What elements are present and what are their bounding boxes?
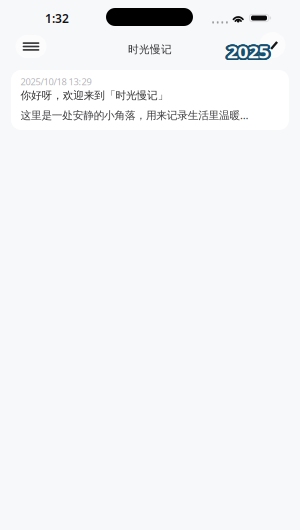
staticText: 2025	[228, 39, 272, 65]
staticText: 2025	[225, 41, 269, 67]
staticText: 2025	[227, 41, 271, 67]
staticText: 2025	[228, 38, 272, 65]
staticText: 2025	[225, 37, 269, 63]
staticText: 2025	[226, 41, 270, 67]
staticText: 2025	[224, 40, 268, 66]
button[interactable]: Menu	[11, 32, 51, 60]
staticText: 你好呀，欢迎来到「时光慢记」	[20, 89, 169, 102]
staticText: 这里是一处安静的小角落，用来记录生活里温暖…	[20, 108, 248, 122]
staticText: 时光慢记	[128, 43, 172, 56]
staticText: 2025	[224, 38, 268, 65]
staticText: 1:32	[45, 10, 69, 26]
staticText: 2025	[228, 37, 272, 64]
staticText: 2025	[225, 41, 269, 67]
staticText: 2025	[224, 40, 268, 67]
staticText: 2025	[227, 41, 271, 67]
staticText: 2025	[225, 37, 269, 63]
staticText: 2025	[227, 37, 271, 63]
staticText: 2025	[224, 38, 268, 64]
staticText: 2025	[228, 40, 272, 66]
staticText: 2025/10/18 13:29	[20, 75, 91, 88]
staticText: 2025	[228, 39, 272, 66]
button[interactable]: 2025/10/18 13:29	[11, 70, 289, 130]
staticText: 2025	[228, 40, 272, 67]
button[interactable]: Year 2025	[222, 30, 280, 68]
staticText: 2025	[224, 39, 268, 65]
staticText: 2025	[228, 38, 272, 64]
staticText: 2025	[224, 39, 268, 66]
staticText: 2025	[226, 39, 270, 65]
staticText: 2025	[224, 37, 268, 64]
staticText: 2025	[227, 37, 271, 63]
staticText: 2025	[226, 36, 270, 63]
